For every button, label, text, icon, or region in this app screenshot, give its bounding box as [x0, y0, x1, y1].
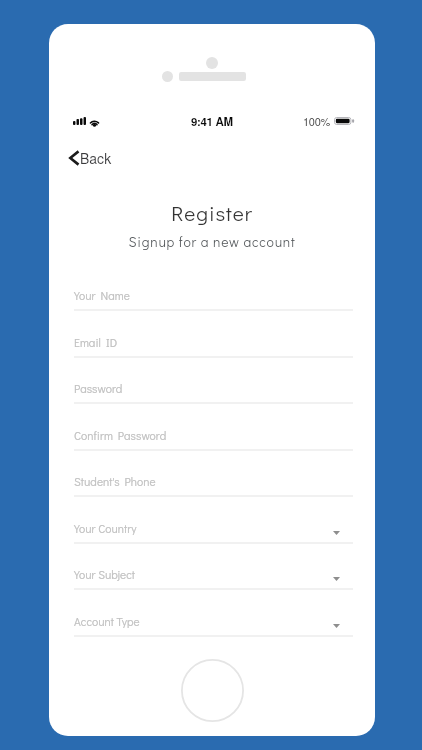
staticText: Signup for a new account: [49, 233, 375, 251]
button[interactable]: Password: [74, 377, 353, 404]
staticText: Your Name: [74, 288, 130, 303]
staticText: Your Subject: [74, 567, 136, 582]
button[interactable]: Email ID: [74, 331, 353, 358]
button[interactable]: Home: [181, 659, 244, 722]
button[interactable]: Your Subject: [74, 563, 353, 590]
staticText: Confirm Password: [74, 428, 167, 443]
staticText: Account Type: [74, 614, 140, 629]
staticText: Register: [49, 199, 375, 227]
staticText: Student's Phone: [74, 474, 156, 489]
staticText: Email ID: [74, 335, 118, 350]
staticText: 9:41 AM: [191, 113, 233, 129]
staticText: Password: [74, 381, 123, 396]
staticText: Your Country: [74, 521, 137, 536]
button[interactable]: Back: [65, 144, 116, 172]
button[interactable]: Confirm Password: [74, 424, 353, 451]
button[interactable]: Your Name: [74, 284, 353, 311]
button[interactable]: Account Type: [74, 610, 353, 637]
staticText: 100%: [303, 113, 331, 129]
staticText: Back: [80, 148, 112, 168]
button[interactable]: Your Country: [74, 517, 353, 544]
button[interactable]: Student's Phone: [74, 470, 353, 497]
